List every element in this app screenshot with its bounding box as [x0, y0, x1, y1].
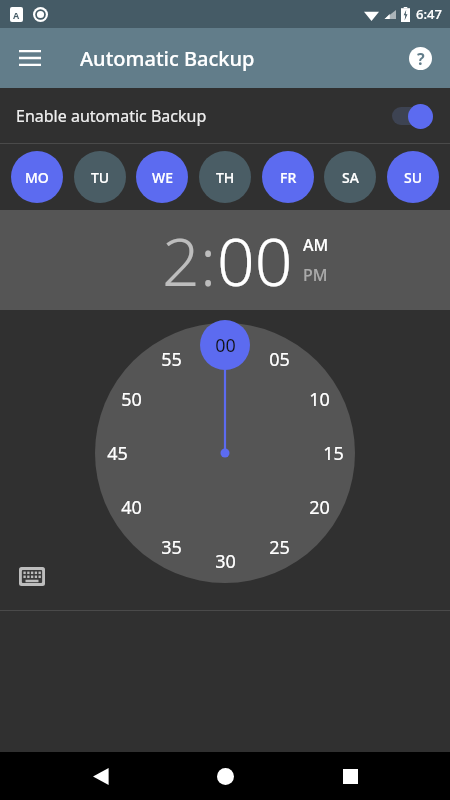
- button[interactable]: SA: [324, 151, 376, 203]
- button[interactable]: 00: [217, 215, 293, 305]
- staticText: 05: [269, 347, 290, 372]
- staticText: Enable automatic Backup: [16, 105, 207, 127]
- button[interactable]: 00: [95, 323, 355, 583]
- staticText: A: [13, 9, 20, 21]
- staticText: WE: [152, 168, 173, 187]
- staticText: TH: [216, 168, 235, 187]
- button[interactable]: FR: [262, 151, 314, 203]
- staticText: 50: [121, 387, 142, 412]
- staticText: ?: [417, 48, 425, 70]
- button[interactable]: 05: [95, 323, 355, 583]
- button[interactable]: AM: [303, 234, 329, 256]
- button[interactable]: 10: [95, 323, 355, 583]
- staticText: 55: [161, 347, 182, 372]
- button[interactable]: PM: [303, 264, 328, 286]
- staticText: 20: [309, 495, 330, 520]
- button[interactable]: 30: [95, 323, 355, 583]
- staticText: 25: [269, 535, 290, 560]
- button[interactable]: 40: [95, 323, 355, 583]
- staticText: 6:47: [416, 5, 442, 23]
- button[interactable]: Help: [398, 36, 442, 80]
- button[interactable]: 45: [95, 323, 355, 583]
- button[interactable]: Switch to text input: [14, 558, 50, 594]
- staticText: FR: [280, 168, 297, 187]
- button[interactable]: Open navigation menu: [8, 36, 52, 80]
- staticText: 30: [215, 549, 236, 574]
- staticText: 00: [215, 333, 236, 358]
- button[interactable]: 25: [95, 323, 355, 583]
- button[interactable]: WE: [136, 151, 188, 203]
- button[interactable]: Back: [77, 752, 125, 800]
- staticText: 15: [323, 441, 344, 466]
- staticText: SA: [342, 168, 359, 187]
- button[interactable]: TH: [199, 151, 251, 203]
- staticText: :: [200, 215, 217, 305]
- staticText: TU: [91, 168, 110, 187]
- button[interactable]: TU: [74, 151, 126, 203]
- staticText: 45: [107, 441, 128, 466]
- staticText: 10: [309, 387, 330, 412]
- button[interactable]: 55: [95, 323, 355, 583]
- button[interactable]: MO: [11, 151, 63, 203]
- button[interactable]: 2: [162, 215, 200, 305]
- button[interactable]: Enable automatic Backup: [0, 88, 450, 143]
- staticText: 40: [121, 495, 142, 520]
- button[interactable]: 20: [95, 323, 355, 583]
- staticText: Automatic Backup: [80, 45, 255, 72]
- staticText: SU: [404, 168, 423, 187]
- button[interactable]: Home: [201, 752, 249, 800]
- button[interactable]: 50: [95, 323, 355, 583]
- staticText: MO: [25, 168, 49, 187]
- button[interactable]: Recent apps: [326, 752, 374, 800]
- button[interactable]: SU: [387, 151, 439, 203]
- staticText: 35: [161, 535, 182, 560]
- button[interactable]: 35: [95, 323, 355, 583]
- button[interactable]: 15: [95, 323, 355, 583]
